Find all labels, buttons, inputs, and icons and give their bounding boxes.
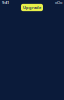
staticText: Upgrade <box>23 5 41 10</box>
staticText: 9:41 <box>2 0 9 5</box>
staticText: oOo <box>55 0 62 5</box>
